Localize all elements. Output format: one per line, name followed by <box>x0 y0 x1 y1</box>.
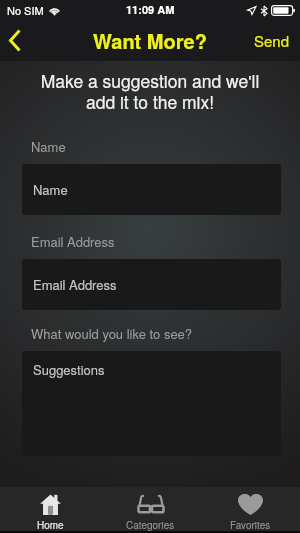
staticText: Name <box>31 137 66 156</box>
staticText: Home <box>37 518 64 531</box>
button[interactable]: Home <box>0 487 100 531</box>
staticText: Send <box>254 30 290 51</box>
staticText: Name <box>33 180 68 199</box>
button[interactable]: Name <box>22 164 281 215</box>
button[interactable]: Send <box>254 20 290 61</box>
staticText: Categories <box>126 518 175 531</box>
staticText: Want More? <box>93 26 207 55</box>
staticText: Make a suggestion and we'll add it to th… <box>10 68 290 114</box>
staticText: Suggestions <box>33 360 105 379</box>
button[interactable]: Categories <box>100 487 200 531</box>
staticText: 11:09 AM <box>126 2 175 18</box>
staticText: Email Address <box>33 275 117 294</box>
button[interactable]: Favorites <box>200 487 300 531</box>
staticText: No SIM <box>7 2 44 18</box>
staticText: What would you like to see? <box>31 324 193 343</box>
staticText: Favorites <box>230 518 271 531</box>
button[interactable]: Back <box>0 20 40 61</box>
button[interactable]: Suggestions <box>22 351 281 456</box>
staticText: Email Address <box>31 232 115 251</box>
button[interactable]: Email Address <box>22 259 281 310</box>
